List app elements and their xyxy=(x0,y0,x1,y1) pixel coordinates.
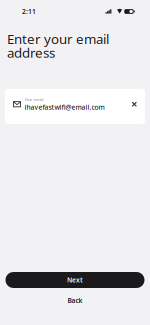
staticText: Back xyxy=(67,296,82,305)
staticText: Your email xyxy=(24,97,43,102)
staticText: address xyxy=(7,44,55,61)
staticText: ihavefastwifi@email.com xyxy=(24,103,104,112)
button[interactable]: Back xyxy=(5,288,144,313)
staticText: Enter your email xyxy=(7,30,109,48)
button[interactable]: Clear text xyxy=(128,97,141,111)
staticText: Next xyxy=(67,276,83,284)
button[interactable]: Next xyxy=(5,272,144,288)
staticText: 2:11 xyxy=(22,7,36,16)
